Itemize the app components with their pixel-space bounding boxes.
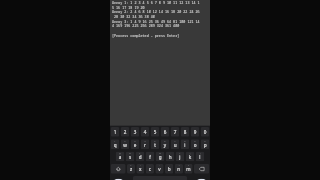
staticText: x: [139, 166, 142, 173]
button[interactable]: 1: [111, 139, 119, 149]
button[interactable]: 4: [141, 139, 149, 149]
staticText: 6: [164, 129, 166, 135]
button[interactable]: 4: [141, 127, 149, 137]
staticText: 2: [124, 139, 126, 142]
button[interactable]: _: [146, 152, 154, 161]
button[interactable]: :: [155, 164, 164, 174]
staticText: Array 1: 1 2 3 4 5 6 7 8 9 10 11 12 13 1…: [112, 0, 200, 5]
staticText: 2: [124, 129, 126, 135]
staticText: y: [164, 142, 166, 148]
staticText: 3: [134, 139, 136, 142]
button[interactable]: +: [176, 152, 184, 161]
button[interactable]: (: [186, 152, 194, 161]
staticText: w: [123, 142, 127, 148]
staticText: 8: [184, 139, 186, 142]
button[interactable]: Shift: [111, 164, 126, 174]
button[interactable]: 2: [121, 127, 129, 137]
staticText: c: [149, 166, 151, 173]
button[interactable]: 8: [181, 127, 189, 137]
button[interactable]: 1: [111, 127, 119, 137]
button[interactable]: &: [156, 152, 164, 161]
staticText: @: [119, 152, 121, 155]
button[interactable]: 9: [191, 139, 199, 149]
staticText: u: [174, 142, 177, 148]
staticText: *: [130, 164, 132, 167]
staticText: k: [189, 154, 191, 160]
staticText: 4: [144, 139, 146, 142]
button[interactable]: !: [175, 164, 183, 174]
staticText: 4 169 196 225 256 289 324 361 400: [112, 24, 179, 28]
staticText: 0: [204, 139, 206, 142]
staticText: [Process completed - press Enter]: [112, 33, 179, 38]
staticText: 9: [194, 139, 196, 142]
staticText: 9: [194, 129, 196, 135]
staticText: d: [139, 154, 142, 160]
button[interactable]: 7: [171, 127, 179, 137]
staticText: l: [199, 154, 201, 160]
button[interactable]: ): [196, 152, 204, 161]
button[interactable]: 8: [181, 139, 189, 149]
staticText: 1: [114, 139, 116, 142]
button[interactable]: Symbols: [112, 179, 125, 180]
staticText: 5: [154, 139, 156, 142]
staticText: 8: [184, 129, 186, 135]
staticText: ?: [188, 164, 189, 167]
button[interactable]: #: [126, 152, 134, 161]
button[interactable]: ': [146, 164, 154, 174]
staticText: m: [186, 166, 191, 173]
staticText: Array 3: 1 4 9 16 25 36 49 64 81 100 121…: [112, 19, 200, 24]
staticText: +: [179, 152, 181, 155]
staticText: r: [144, 142, 146, 148]
staticText: p: [204, 142, 207, 148]
staticText: 3: [134, 129, 136, 135]
button[interactable]: 5: [151, 139, 159, 149]
staticText: o: [194, 142, 197, 148]
staticText: z: [130, 166, 132, 173]
button[interactable]: $: [136, 152, 144, 161]
button[interactable]: 9: [191, 127, 199, 137]
button[interactable]: 7: [171, 139, 179, 149]
staticText: 5 16 17 18 19 20: [112, 5, 145, 10]
staticText: e: [134, 142, 136, 148]
staticText: 5: [154, 129, 156, 135]
staticText: j: [179, 154, 181, 160]
staticText: i: [184, 142, 186, 148]
staticText: _: [150, 152, 151, 155]
staticText: b: [168, 166, 171, 173]
staticText: f: [149, 154, 151, 160]
button[interactable]: ": [136, 164, 144, 174]
button[interactable]: 5: [151, 127, 159, 137]
button[interactable]: 6: [161, 139, 169, 149]
staticText: $: [139, 152, 141, 155]
button[interactable]: -: [166, 152, 174, 161]
staticText: 28 30 32 34 36 38 40: [112, 14, 155, 19]
button[interactable]: @: [116, 152, 124, 161]
button[interactable]: 3: [131, 139, 139, 149]
staticText: g: [159, 154, 162, 160]
button[interactable]: 6: [161, 127, 169, 137]
button[interactable]: Backspace: [194, 164, 209, 174]
staticText: ": [140, 164, 141, 167]
staticText: 0: [204, 129, 206, 135]
button[interactable]: 2: [121, 139, 129, 149]
staticText: a: [119, 154, 121, 160]
button[interactable]: ;: [165, 164, 173, 174]
staticText: v: [158, 166, 161, 173]
button[interactable]: 0: [201, 127, 209, 137]
staticText: 7: [174, 139, 176, 142]
button[interactable]: 3: [131, 127, 139, 137]
staticText: ;: [169, 164, 170, 167]
button[interactable]: Enter: [195, 179, 208, 180]
staticText: q: [114, 142, 117, 148]
staticText: #: [129, 152, 131, 155]
button[interactable]: ?: [184, 164, 193, 174]
staticText: 4: [144, 129, 146, 135]
button[interactable]: 0: [201, 139, 209, 149]
staticText: h: [169, 154, 172, 160]
button[interactable]: *: [127, 164, 135, 174]
staticText: 7: [174, 129, 176, 135]
staticText: t: [154, 142, 156, 148]
